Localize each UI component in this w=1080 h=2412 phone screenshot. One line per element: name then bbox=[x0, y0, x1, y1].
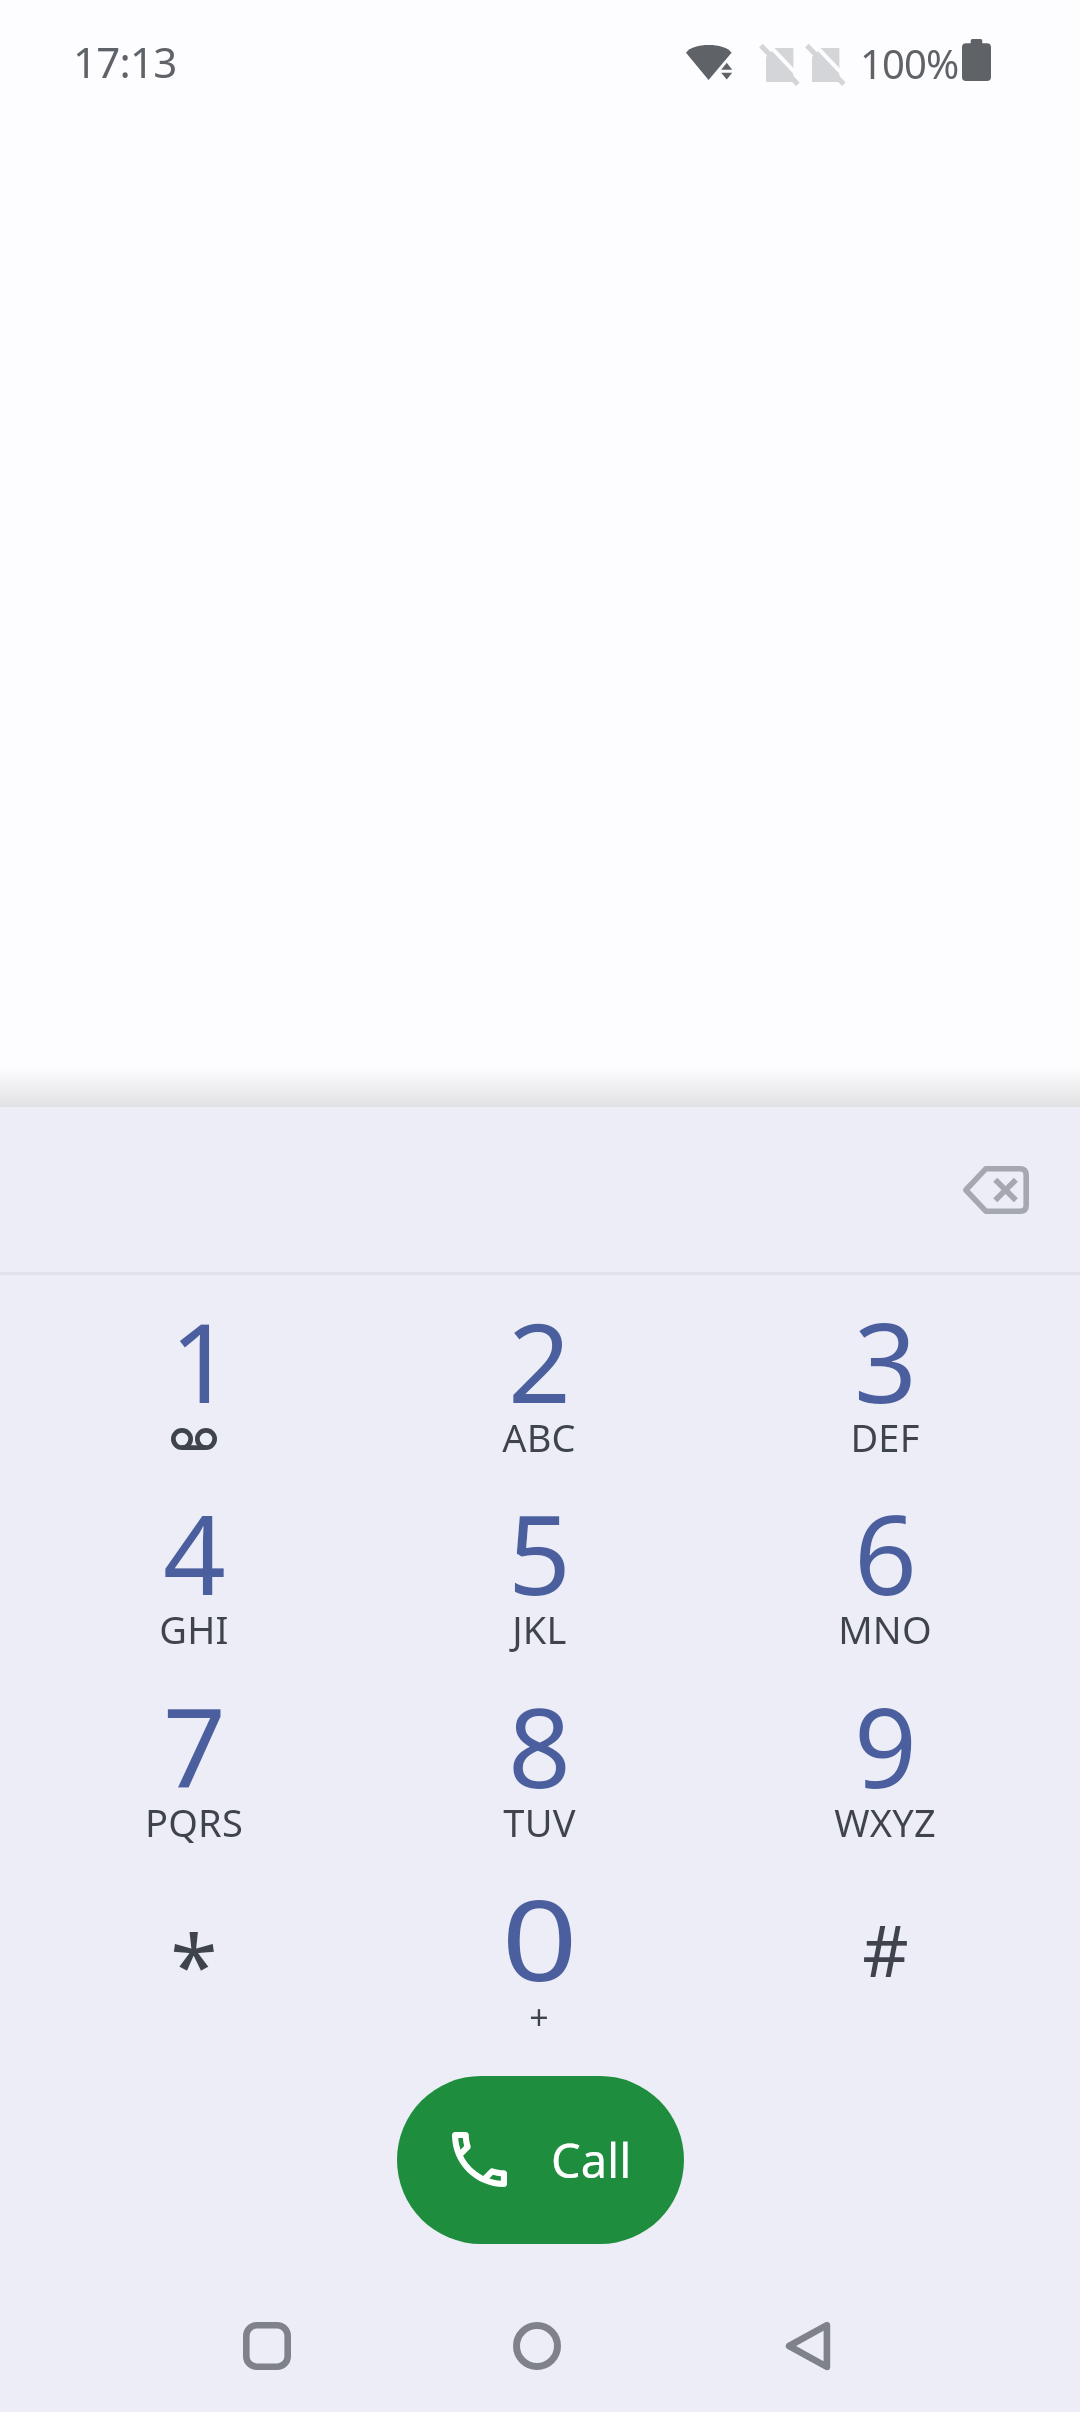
staticText: ABC bbox=[502, 1411, 576, 1463]
staticText: 0 bbox=[501, 1860, 578, 2013]
button[interactable]: 5 bbox=[366, 1466, 712, 1658]
staticText: + bbox=[529, 1994, 549, 2040]
staticText: 9 bbox=[854, 1670, 917, 1820]
button[interactable]: Phone number bbox=[0, 1107, 1080, 1272]
staticText: GHI bbox=[159, 1603, 229, 1655]
staticText: 8 bbox=[508, 1670, 571, 1820]
staticText: 1 bbox=[170, 1285, 233, 1435]
button[interactable]: 6 bbox=[712, 1466, 1058, 1658]
staticText: * bbox=[170, 1905, 218, 2022]
staticText: Call bbox=[551, 2128, 632, 2192]
staticText: 7 bbox=[163, 1670, 226, 1820]
button[interactable]: 3 bbox=[712, 1274, 1058, 1466]
button[interactable]: 8 bbox=[366, 1659, 712, 1851]
button[interactable]: 9 bbox=[712, 1659, 1058, 1851]
staticText: 6 bbox=[854, 1477, 917, 1627]
button[interactable]: Back bbox=[748, 2290, 868, 2402]
button[interactable]: Backspace bbox=[938, 1132, 1054, 1248]
staticText: # bbox=[862, 1900, 909, 1998]
staticText: 17:13 bbox=[73, 33, 177, 90]
button[interactable]: 0 bbox=[366, 1851, 712, 2043]
staticText: PQRS bbox=[145, 1796, 243, 1848]
staticText: MNO bbox=[838, 1603, 932, 1655]
staticText: 4 bbox=[163, 1477, 226, 1627]
button[interactable]: 2 bbox=[366, 1274, 712, 1466]
button[interactable]: # bbox=[712, 1851, 1058, 2043]
staticText: 3 bbox=[854, 1285, 917, 1435]
staticText: JKL bbox=[512, 1603, 567, 1655]
button[interactable]: 7 bbox=[21, 1659, 367, 1851]
staticText: WXYZ bbox=[834, 1796, 936, 1848]
staticText: TUV bbox=[503, 1796, 576, 1848]
button[interactable]: 4 bbox=[21, 1466, 367, 1658]
staticText: 2 bbox=[508, 1285, 571, 1435]
staticText: 5 bbox=[508, 1477, 571, 1627]
staticText: 100% bbox=[860, 36, 959, 90]
button[interactable]: Recents bbox=[207, 2290, 327, 2402]
button[interactable]: 1 bbox=[21, 1274, 367, 1466]
button[interactable]: * bbox=[21, 1851, 367, 2043]
button[interactable]: Call bbox=[397, 2076, 684, 2244]
button[interactable]: Home bbox=[477, 2290, 597, 2402]
staticText: DEF bbox=[850, 1411, 920, 1463]
